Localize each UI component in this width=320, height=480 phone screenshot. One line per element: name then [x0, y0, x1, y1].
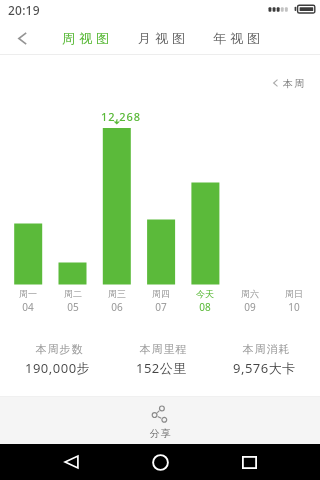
button[interactable]: 本周消耗	[213, 342, 316, 377]
button[interactable]: 本周	[273, 76, 307, 90]
button[interactable]: 本周里程	[110, 342, 213, 377]
staticText: 152公里	[136, 359, 187, 377]
staticText: 周一	[19, 288, 37, 299]
staticText: 05	[67, 300, 79, 314]
button[interactable]: Recents	[219, 444, 279, 480]
staticText: 07	[155, 300, 167, 314]
button[interactable]: 分享	[0, 397, 320, 444]
staticText: 06	[111, 300, 123, 314]
staticText: 周四	[152, 288, 170, 299]
staticText: 9,576大卡	[233, 359, 296, 377]
button[interactable]: 周视图	[55, 22, 115, 54]
button[interactable]: Back	[0, 22, 44, 54]
staticText: 04	[22, 300, 34, 314]
staticText: 今天	[196, 288, 214, 299]
staticText: 09	[244, 300, 256, 314]
button[interactable]: 本周步数	[6, 342, 110, 377]
staticText: 分享	[149, 427, 171, 440]
staticText: 190,000步	[25, 359, 91, 377]
staticText: 年视图	[211, 30, 262, 46]
staticText: 月视图	[136, 30, 187, 46]
staticText: 周三	[108, 288, 126, 299]
button[interactable]: 月视图	[131, 22, 191, 54]
staticText: 周六	[241, 288, 259, 299]
staticText: 20:19	[8, 2, 40, 18]
staticText: 本周	[283, 77, 307, 90]
staticText: 10	[288, 300, 300, 314]
staticText: 本周消耗	[242, 342, 290, 356]
button[interactable]: 年视图	[206, 22, 266, 54]
staticText: 本周里程	[139, 342, 187, 356]
staticText: 周二	[64, 288, 82, 299]
staticText: 本周步数	[35, 342, 83, 356]
staticText: 周视图	[60, 30, 111, 46]
staticText: 周日	[285, 288, 303, 299]
staticText: 08	[199, 300, 211, 314]
staticText: 12,268	[101, 109, 141, 124]
button[interactable]: Back	[41, 444, 101, 480]
button[interactable]: Home	[130, 444, 190, 480]
